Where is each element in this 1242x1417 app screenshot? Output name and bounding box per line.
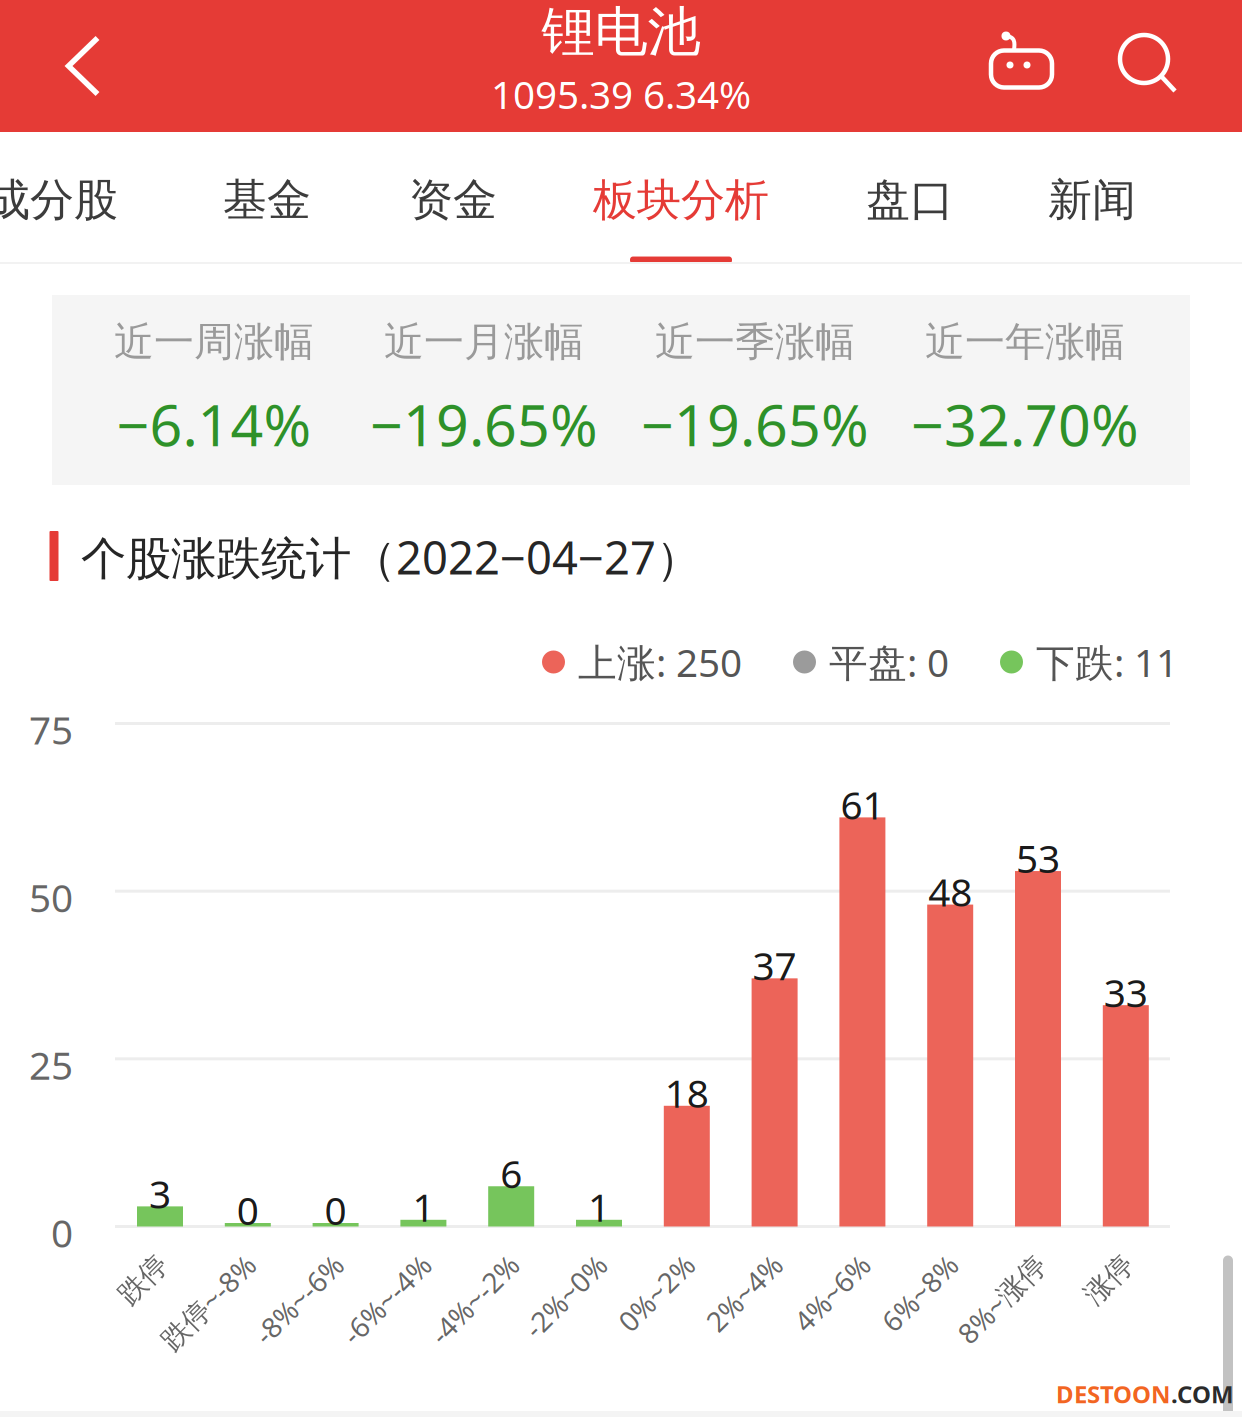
staticText: 6%~8% <box>888 1312 982 1349</box>
staticText: 1 <box>412 1181 434 1232</box>
staticText: 8%~涨停 <box>959 1312 1070 1349</box>
button[interactable]: 基金 <box>174 132 360 280</box>
staticText: 近一季涨幅 <box>655 317 855 366</box>
staticText: 75 <box>29 704 73 755</box>
button[interactable]: 板块分析 <box>557 132 805 280</box>
staticText: 基金 <box>223 173 311 227</box>
staticText: 新闻 <box>1048 173 1136 227</box>
staticText: 61 <box>840 779 884 830</box>
staticText: 平盘: 0 <box>829 636 949 688</box>
staticText: 50 <box>29 871 73 923</box>
staticText: 37 <box>753 940 797 991</box>
staticText: 33 <box>1104 966 1148 1018</box>
staticText: -2%~0% <box>528 1312 631 1349</box>
staticText: 跌停 <box>136 1313 192 1348</box>
staticText: 2%~4% <box>713 1312 807 1349</box>
staticText: 上涨: 250 <box>578 636 742 688</box>
staticText: −19.65% <box>641 386 869 462</box>
button[interactable]: 资金 <box>360 132 546 280</box>
staticText: 近一周涨幅 <box>114 317 314 366</box>
staticText: 成分股 <box>0 173 118 227</box>
button[interactable]: 盘口 <box>817 132 1003 280</box>
staticText: -8%~-6% <box>256 1312 368 1349</box>
staticText: 资金 <box>409 173 497 227</box>
staticText: 48 <box>928 866 972 917</box>
button[interactable]: Search <box>1093 9 1203 119</box>
staticText: 4%~6% <box>800 1312 894 1349</box>
button[interactable]: 新闻 <box>999 132 1185 280</box>
staticText: 跌停~-8% <box>160 1312 280 1349</box>
staticText: 0%~2% <box>625 1312 719 1349</box>
staticText: 0 <box>325 1184 347 1236</box>
staticText: -6%~-4% <box>343 1312 455 1349</box>
staticText: 下跌: 11 <box>1036 636 1178 688</box>
staticText: −19.65% <box>370 386 598 462</box>
staticText: 1 <box>588 1181 610 1232</box>
staticText: 18 <box>665 1067 709 1118</box>
staticText: DESTOON <box>1056 1378 1171 1410</box>
button[interactable]: 成分股 <box>0 132 157 280</box>
staticText: −6.14% <box>116 386 311 462</box>
staticText: 盘口 <box>866 173 954 227</box>
staticText: 25 <box>29 1039 73 1090</box>
staticText: 近一月涨幅 <box>384 317 584 366</box>
staticText: .COM <box>1171 1378 1234 1410</box>
staticText: 3 <box>149 1168 171 1219</box>
button[interactable]: Assistant <box>967 11 1077 121</box>
staticText: 个股涨跌统计（2022−04−27） <box>81 527 701 587</box>
staticText: 1095.39 6.34% <box>491 68 751 120</box>
button[interactable]: Back <box>23 0 143 132</box>
staticText: 53 <box>1016 832 1060 884</box>
staticText: 0 <box>51 1207 73 1258</box>
staticText: 0 <box>237 1184 259 1236</box>
staticText: −32.70% <box>911 386 1139 462</box>
staticText: 锂电池 <box>541 0 700 65</box>
staticText: 板块分析 <box>593 173 769 227</box>
staticText: 近一年涨幅 <box>925 317 1125 366</box>
staticText: -4%~-2% <box>431 1312 543 1349</box>
staticText: 6 <box>500 1148 522 1199</box>
